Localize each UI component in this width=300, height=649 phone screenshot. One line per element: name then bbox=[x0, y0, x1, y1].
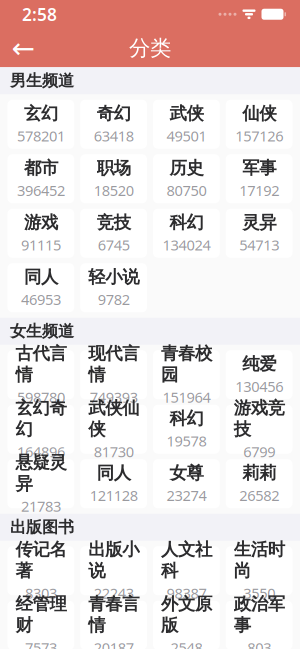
staticText: 9782 bbox=[98, 290, 130, 309]
button[interactable]: 莉莉 bbox=[226, 459, 293, 508]
staticText: 157126 bbox=[235, 126, 283, 146]
staticText: 134024 bbox=[162, 235, 210, 255]
staticText: 54713 bbox=[239, 235, 279, 255]
staticText: 19578 bbox=[166, 431, 206, 451]
staticText: ← bbox=[11, 32, 34, 64]
staticText: 749393 bbox=[90, 387, 138, 407]
staticText: 都市 bbox=[24, 157, 58, 179]
staticText: 悬疑灵异 bbox=[15, 452, 66, 494]
button[interactable]: 玄幻奇幻 bbox=[7, 405, 74, 454]
button[interactable]: 玄幻 bbox=[7, 100, 74, 149]
staticText: 分类 bbox=[129, 35, 171, 61]
staticText: 男生频道 bbox=[10, 71, 74, 91]
staticText: 竞技 bbox=[97, 212, 131, 233]
button[interactable]: 科幻 bbox=[153, 405, 220, 454]
staticText: 22243 bbox=[94, 583, 134, 603]
staticText: 职场 bbox=[97, 157, 131, 179]
button[interactable]: 灵异 bbox=[226, 209, 293, 258]
staticText: 青春校园 bbox=[161, 343, 212, 385]
staticText: 玄幻奇幻 bbox=[15, 397, 66, 440]
button[interactable]: 科幻 bbox=[153, 209, 220, 258]
staticText: 军事 bbox=[242, 157, 276, 179]
staticText: 21783 bbox=[21, 496, 61, 516]
staticText: 121128 bbox=[90, 486, 138, 505]
button[interactable]: 生活时尚 bbox=[226, 546, 293, 595]
button[interactable]: 出版小说 bbox=[80, 546, 147, 595]
staticText: 396452 bbox=[17, 181, 65, 200]
staticText: 164896 bbox=[17, 442, 65, 461]
staticText: 63418 bbox=[94, 126, 134, 146]
staticText: 经管理财 bbox=[15, 593, 66, 636]
button[interactable]: 轻小说 bbox=[80, 263, 147, 312]
button[interactable]: 武侠 bbox=[153, 100, 220, 149]
staticText: 98387 bbox=[166, 583, 206, 603]
staticText: 578201 bbox=[17, 126, 65, 146]
staticText: 女尊 bbox=[169, 462, 203, 484]
staticText: 8303 bbox=[25, 583, 57, 603]
staticText: 598780 bbox=[17, 387, 65, 407]
staticText: 女生频道 bbox=[10, 321, 74, 341]
staticText: 武侠仙侠 bbox=[88, 397, 139, 440]
staticText: 3550 bbox=[243, 583, 275, 603]
button[interactable]: 经管理财 bbox=[7, 601, 74, 649]
staticText: 莉莉 bbox=[242, 462, 276, 484]
staticText: 80750 bbox=[166, 181, 206, 200]
staticText: 玄幻 bbox=[24, 103, 58, 124]
staticText: 2:58 bbox=[22, 3, 57, 26]
staticText: 130456 bbox=[235, 377, 283, 396]
staticText: 7573 bbox=[25, 638, 57, 649]
staticText: 灵异 bbox=[242, 212, 276, 233]
button[interactable]: 都市 bbox=[7, 154, 74, 203]
staticText: 游戏竞技 bbox=[234, 397, 285, 440]
staticText: 政治军事 bbox=[234, 593, 285, 636]
button[interactable]: 游戏 bbox=[7, 209, 74, 258]
button[interactable]: 悬疑灵异 bbox=[7, 459, 74, 508]
staticText: 人文社科 bbox=[161, 539, 212, 581]
button[interactable]: 武侠仙侠 bbox=[80, 405, 147, 454]
staticText: 6745 bbox=[98, 235, 130, 255]
button[interactable]: 职场 bbox=[80, 154, 147, 203]
button[interactable]: 同人 bbox=[80, 459, 147, 508]
button[interactable]: 政治军事 bbox=[226, 601, 293, 649]
button[interactable]: 现代言情 bbox=[80, 350, 147, 399]
staticText: 2548 bbox=[170, 638, 202, 649]
button[interactable]: 青春校园 bbox=[153, 350, 220, 399]
button[interactable]: 军事 bbox=[226, 154, 293, 203]
button[interactable]: 同人 bbox=[7, 263, 74, 312]
staticText: 同人 bbox=[97, 462, 131, 484]
staticText: 现代言情 bbox=[88, 343, 139, 385]
staticText: 生活时尚 bbox=[234, 539, 285, 581]
button[interactable]: 纯爱 bbox=[226, 350, 293, 399]
button[interactable]: 青春言情 bbox=[80, 601, 147, 649]
button[interactable]: 传记名著 bbox=[7, 546, 74, 595]
staticText: 151964 bbox=[162, 387, 210, 407]
staticText: 武侠 bbox=[169, 103, 203, 124]
staticText: 49501 bbox=[166, 126, 206, 146]
staticText: 26582 bbox=[239, 486, 279, 505]
button[interactable]: 竞技 bbox=[80, 209, 147, 258]
staticText: 传记名著 bbox=[15, 539, 66, 581]
button[interactable]: 仙侠 bbox=[226, 100, 293, 149]
staticText: 同人 bbox=[24, 266, 58, 288]
staticText: 出版小说 bbox=[88, 539, 139, 581]
button[interactable]: Back bbox=[0, 29, 46, 67]
staticText: 20187 bbox=[94, 638, 134, 649]
staticText: 青春言情 bbox=[88, 593, 139, 636]
staticText: 81730 bbox=[94, 442, 134, 461]
staticText: 历史 bbox=[169, 157, 203, 179]
staticText: 科幻 bbox=[169, 408, 203, 429]
button[interactable]: 人文社科 bbox=[153, 546, 220, 595]
staticText: 科幻 bbox=[169, 212, 203, 233]
button[interactable]: 外文原版 bbox=[153, 601, 220, 649]
staticText: 古代言情 bbox=[15, 343, 66, 385]
button[interactable]: 古代言情 bbox=[7, 350, 74, 399]
staticText: 23274 bbox=[166, 486, 206, 505]
button[interactable]: 女尊 bbox=[153, 459, 220, 508]
button[interactable]: 游戏竞技 bbox=[226, 405, 293, 454]
staticText: 46953 bbox=[21, 290, 61, 309]
button[interactable]: 历史 bbox=[153, 154, 220, 203]
staticText: 仙侠 bbox=[242, 103, 276, 124]
staticText: 6799 bbox=[243, 442, 275, 461]
button[interactable]: 奇幻 bbox=[80, 100, 147, 149]
staticText: 18520 bbox=[94, 181, 134, 200]
